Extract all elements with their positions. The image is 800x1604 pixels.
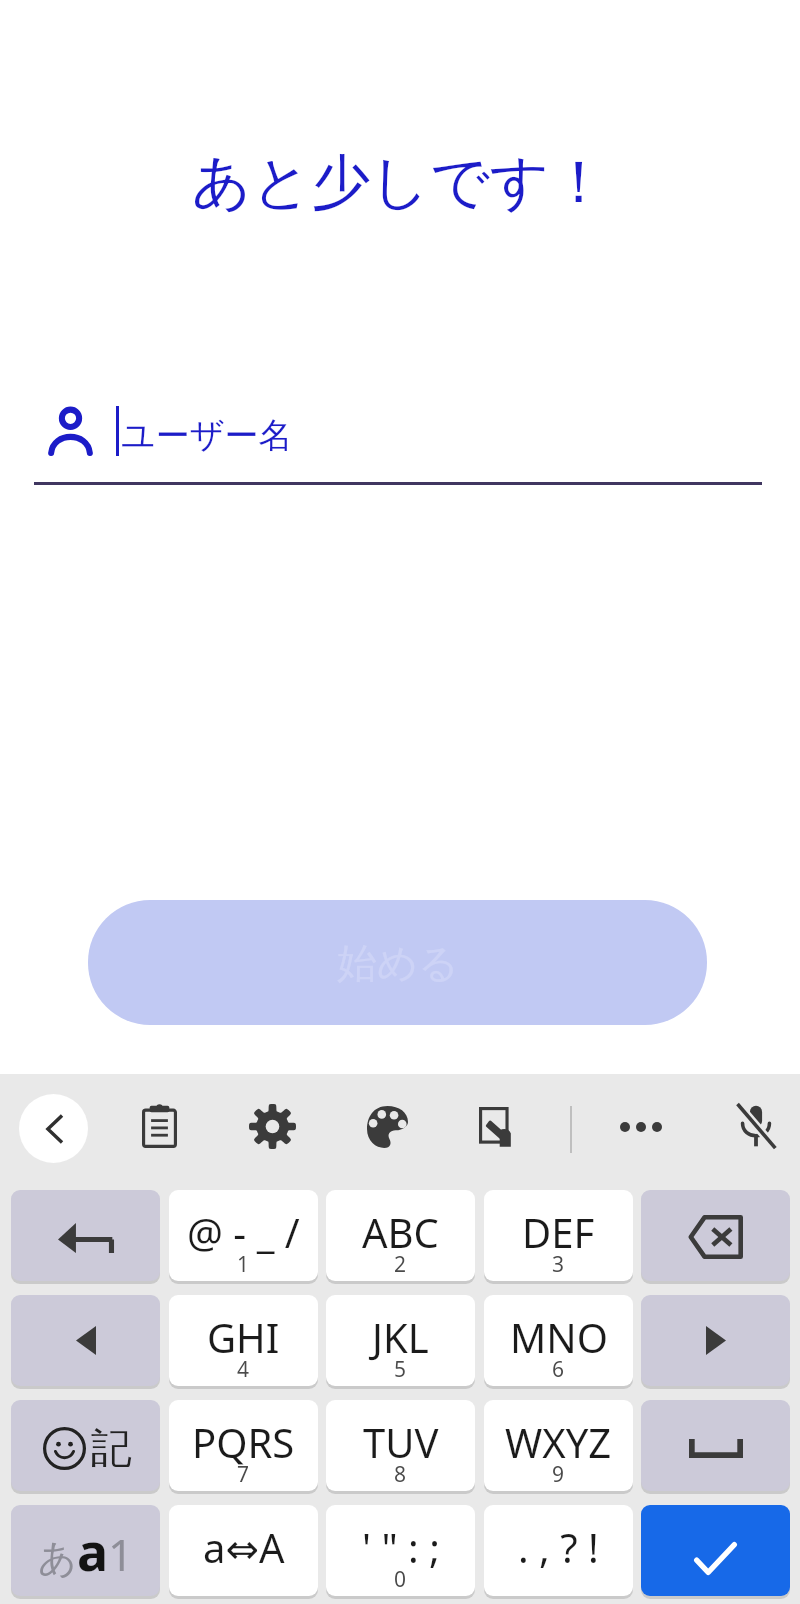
button[interactable]: MNO <box>484 1295 633 1386</box>
staticText: 2 <box>394 1250 407 1279</box>
button[interactable]: Settings <box>237 1092 308 1161</box>
staticText: あa1 <box>38 1515 134 1586</box>
button[interactable]: Emoji and symbols <box>11 1400 160 1491</box>
staticText: JKL <box>372 1310 429 1364</box>
staticText: @ - _ / <box>187 1205 300 1259</box>
staticText: WXYZ <box>505 1415 612 1469</box>
staticText: 8 <box>394 1460 407 1489</box>
button[interactable]: DEF <box>484 1190 633 1281</box>
button[interactable]: WXYZ <box>484 1400 633 1491</box>
button[interactable]: Undo <box>11 1190 160 1281</box>
button[interactable]: Cursor right <box>641 1295 790 1386</box>
button[interactable]: a⇔A <box>169 1505 318 1596</box>
staticText: 7 <box>237 1460 250 1489</box>
staticText: 6 <box>552 1355 565 1384</box>
button[interactable]: 始める <box>88 900 707 1025</box>
staticText: MNO <box>510 1310 608 1364</box>
button[interactable]: TUV <box>326 1400 475 1491</box>
staticText: . , ? ! <box>518 1520 599 1574</box>
staticText: ユーザー名 <box>121 414 293 457</box>
button[interactable]: Handwriting <box>467 1095 528 1158</box>
staticText: ABC <box>362 1205 439 1259</box>
staticText: あと少しです！ <box>0 146 800 220</box>
button[interactable]: Back <box>19 1094 88 1163</box>
button[interactable]: PQRS <box>169 1400 318 1491</box>
staticText: TUV <box>363 1415 439 1469</box>
button[interactable]: Space <box>641 1400 790 1491</box>
button[interactable]: @ - _ / <box>169 1190 318 1281</box>
staticText: DEF <box>522 1205 595 1259</box>
staticText: 記 <box>91 1423 132 1475</box>
button[interactable]: More options <box>608 1110 674 1144</box>
staticText: 0 <box>394 1565 407 1594</box>
button[interactable]: JKL <box>326 1295 475 1386</box>
button[interactable]: GHI <box>169 1295 318 1386</box>
button[interactable]: . , ? ! <box>484 1505 633 1596</box>
staticText: PQRS <box>192 1415 295 1469</box>
staticText: 始める <box>337 938 459 988</box>
staticText: GHI <box>207 1310 280 1364</box>
staticText: ' " : ; <box>362 1520 440 1574</box>
button[interactable]: Mute microphone <box>723 1092 789 1162</box>
staticText: 4 <box>237 1355 250 1384</box>
staticText: 5 <box>394 1355 407 1384</box>
button[interactable]: Cursor left <box>11 1295 160 1386</box>
button[interactable]: ABC <box>326 1190 475 1281</box>
staticText: 3 <box>552 1250 565 1279</box>
button[interactable]: Enter <box>641 1505 790 1596</box>
staticText: 1 <box>237 1250 250 1279</box>
button[interactable]: Theme <box>355 1094 420 1160</box>
button[interactable]: Clipboard <box>130 1093 189 1160</box>
button[interactable]: Backspace <box>641 1190 790 1281</box>
button[interactable]: ' " : ; <box>326 1505 475 1596</box>
button[interactable]: Switch input mode <box>11 1505 160 1596</box>
staticText: 9 <box>552 1460 565 1489</box>
staticText: a⇔A <box>203 1520 285 1574</box>
